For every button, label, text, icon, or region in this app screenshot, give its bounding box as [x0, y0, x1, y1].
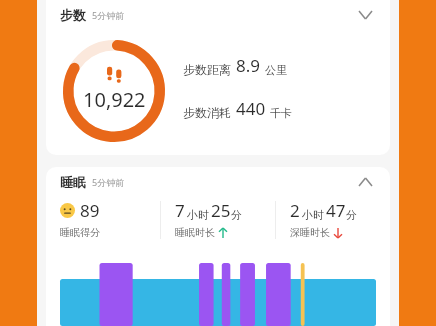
staticText: 睡眠得分	[60, 226, 100, 239]
staticText: 步数	[60, 7, 86, 23]
button[interactable]: Expand	[352, 169, 378, 195]
staticText: 2	[290, 199, 300, 222]
staticText: 步数消耗	[183, 105, 231, 120]
staticText: 千卡	[270, 106, 292, 120]
staticText: 7	[175, 199, 185, 222]
staticText: 分	[231, 208, 242, 222]
staticText: 10,922	[83, 86, 146, 113]
staticText: 深睡时长	[290, 226, 330, 239]
staticText: 89	[80, 199, 100, 222]
staticText: 47	[326, 199, 346, 222]
staticText: 睡眠时长	[175, 226, 215, 239]
staticText: 步数距离	[183, 62, 231, 77]
staticText: 公里	[265, 63, 287, 77]
staticText: 小时	[187, 208, 209, 222]
staticText: 小时	[302, 208, 324, 222]
button[interactable]: 步数	[46, 0, 390, 155]
staticText: 25	[211, 199, 231, 222]
button[interactable]: Collapse	[352, 2, 378, 28]
staticText: 睡眠	[60, 174, 86, 190]
staticText: 8.9	[236, 54, 261, 77]
staticText: 5分钟前	[92, 9, 125, 21]
staticText: 5分钟前	[92, 176, 125, 188]
button[interactable]: 睡眠	[46, 167, 390, 326]
staticText: 分	[346, 208, 357, 222]
staticText: 440	[236, 97, 266, 120]
